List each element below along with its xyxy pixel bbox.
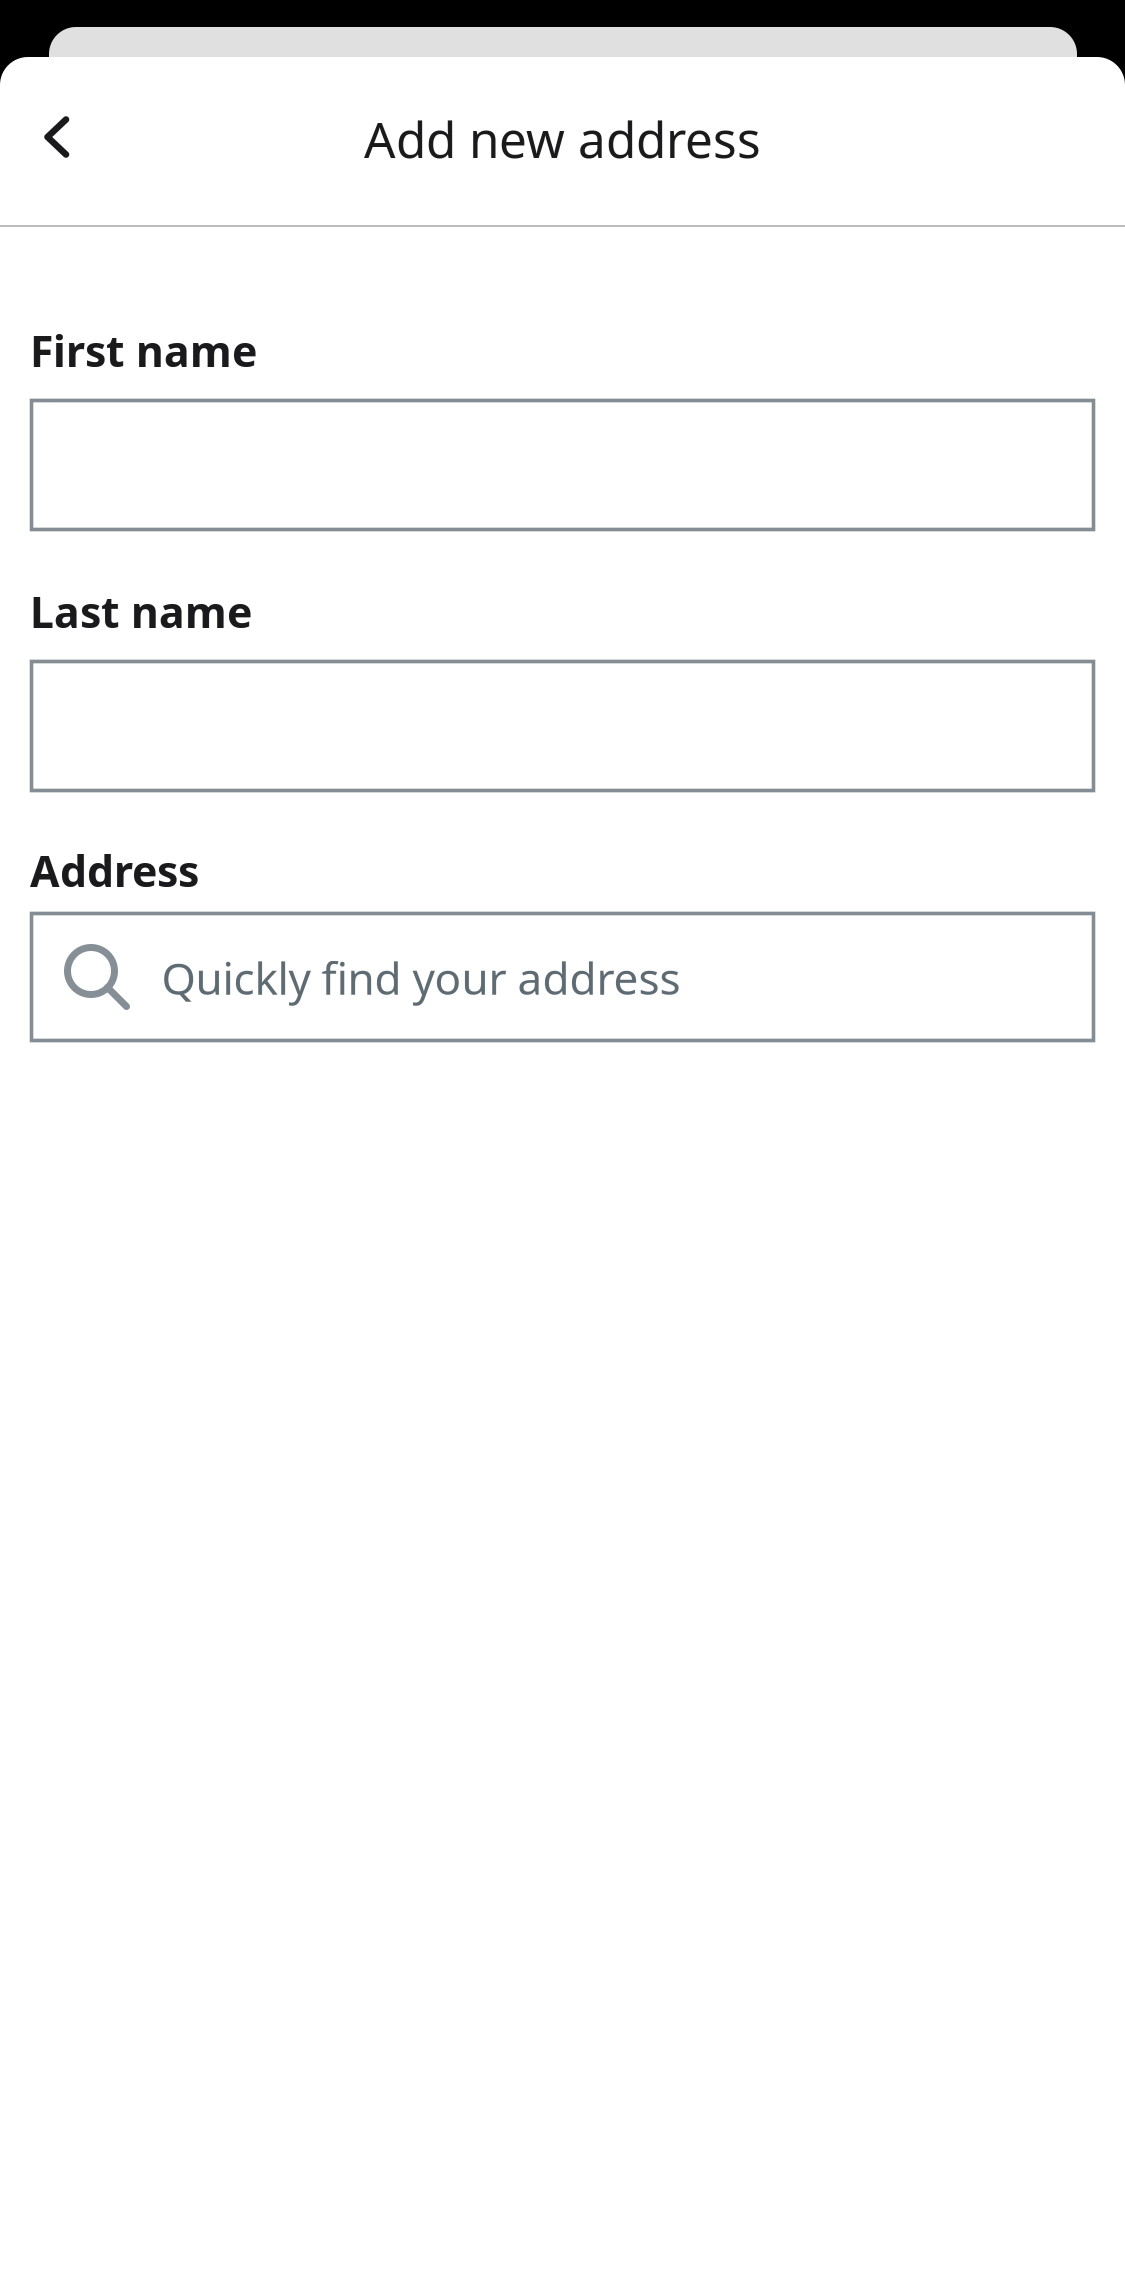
staticText: Quickly find your address — [161, 948, 680, 1007]
button[interactable]: First name — [31, 400, 1093, 529]
button[interactable]: Quickly find your address — [31, 913, 1093, 1040]
staticText: Address — [30, 842, 199, 899]
button[interactable]: Last name — [31, 661, 1093, 790]
button[interactable]: Back — [1, 81, 113, 193]
staticText: First name — [30, 322, 257, 379]
staticText: Add new address — [364, 106, 761, 171]
staticText: Last name — [30, 583, 252, 640]
